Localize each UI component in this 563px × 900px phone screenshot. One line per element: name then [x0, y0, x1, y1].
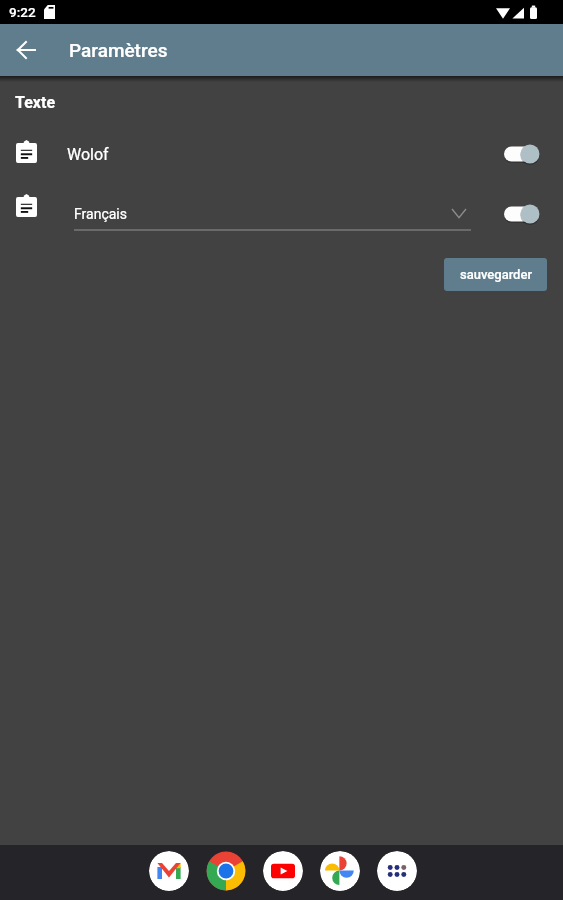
button[interactable]: All apps — [377, 851, 417, 891]
staticText: Paramètres — [69, 39, 168, 61]
button[interactable]: Photos — [320, 851, 360, 891]
staticText: sauvegarder — [460, 267, 532, 282]
button[interactable]: Français — [74, 196, 471, 231]
button[interactable]: Toggle — [499, 140, 543, 168]
button[interactable]: Chrome — [206, 851, 246, 891]
button[interactable]: Toggle — [499, 200, 543, 228]
button[interactable]: Wolof — [0, 132, 563, 176]
button[interactable]: Back — [6, 30, 46, 70]
staticText: 9:22 — [9, 4, 36, 20]
button[interactable]: Gmail — [149, 851, 189, 891]
button[interactable]: sauvegarder — [444, 258, 547, 291]
staticText: Wolof — [67, 145, 109, 164]
button[interactable]: YouTube — [263, 851, 303, 891]
staticText: Français — [74, 206, 127, 222]
staticText: Texte — [15, 93, 56, 112]
